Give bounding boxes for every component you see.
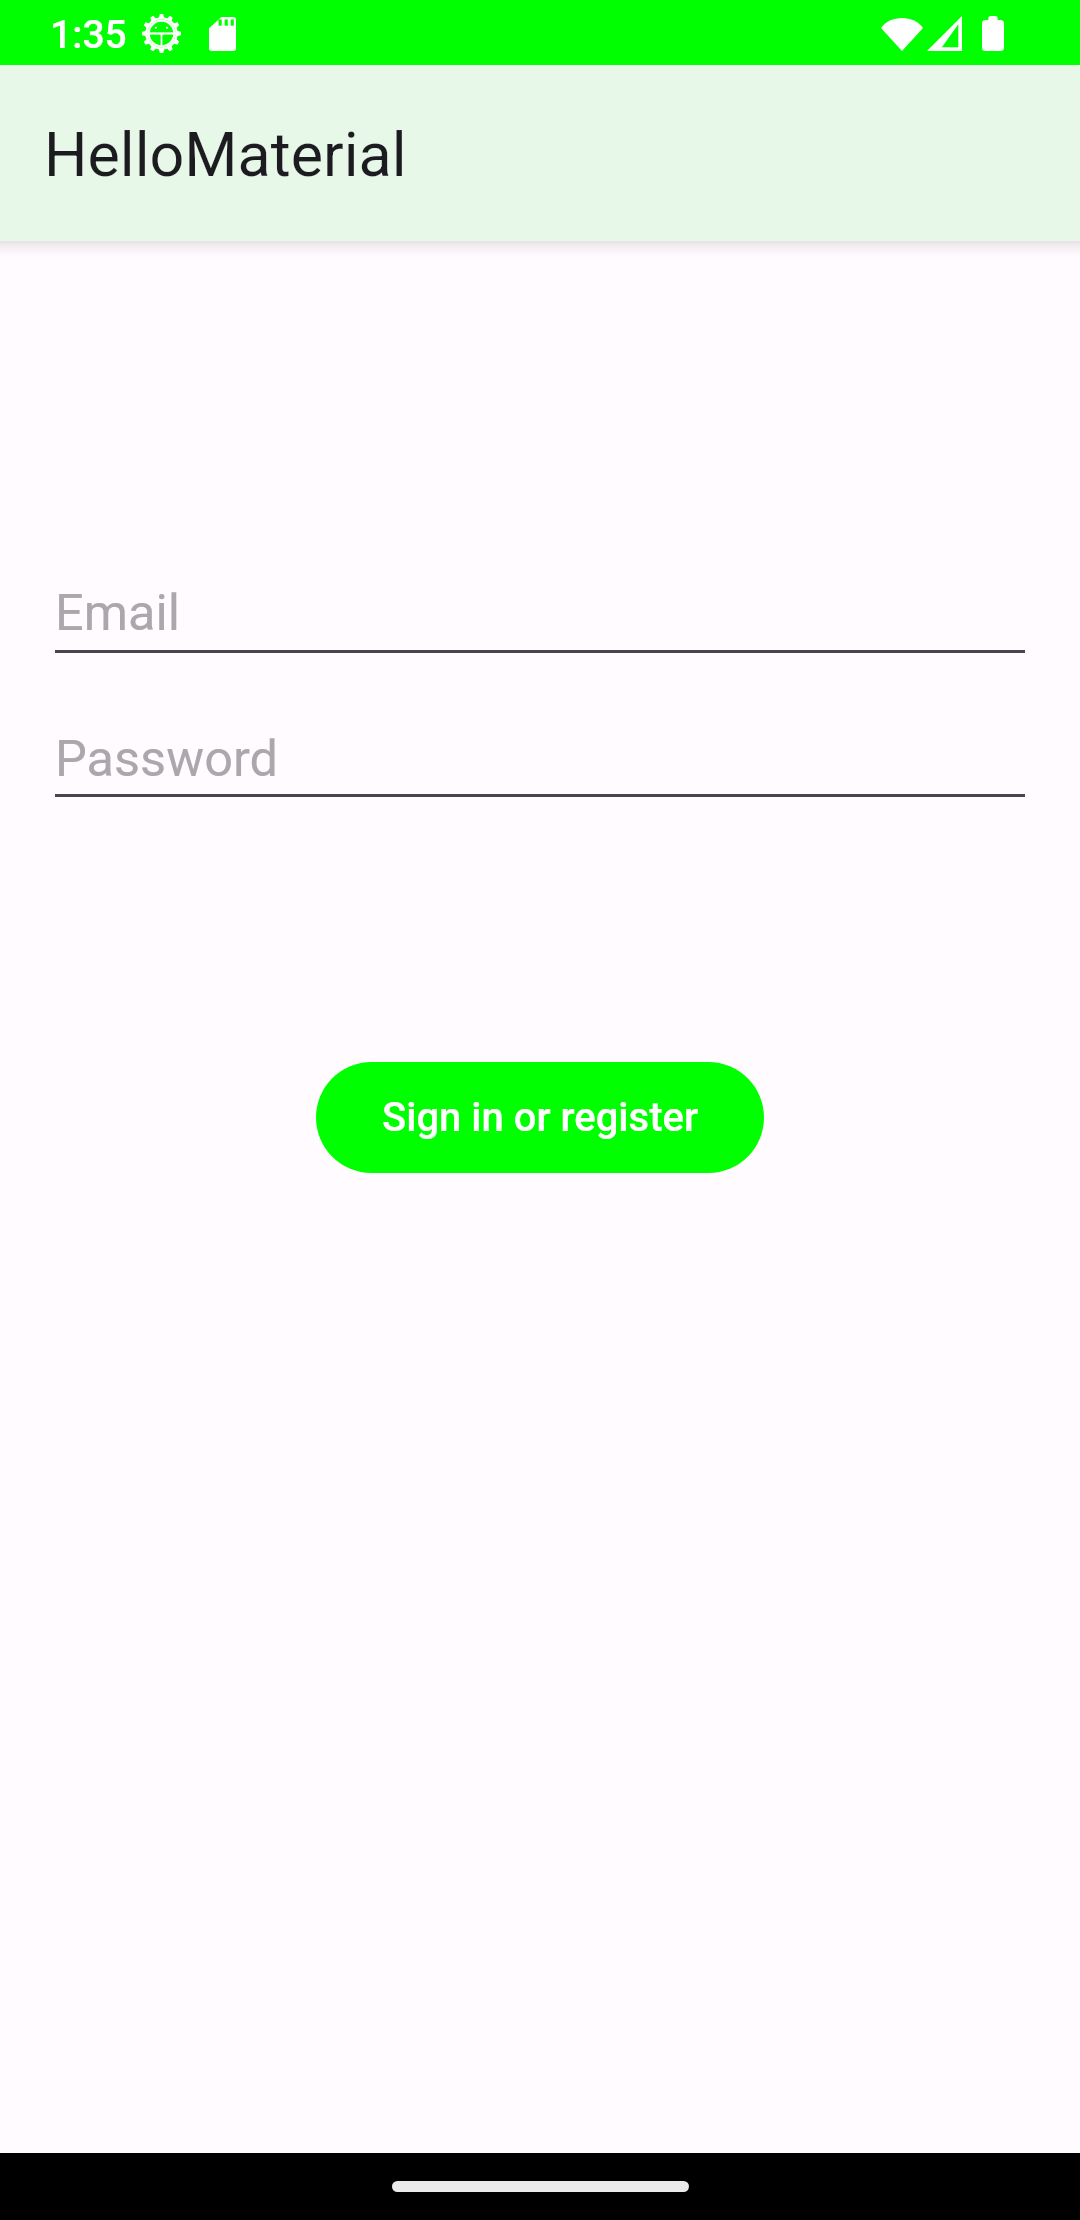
button[interactable]: Password bbox=[55, 713, 1025, 797]
other: Wi-Fi bbox=[881, 16, 923, 51]
staticText: HelloMaterial bbox=[44, 119, 407, 190]
staticText: Sign in or register bbox=[382, 1094, 699, 1141]
other: Mobile signal bbox=[927, 16, 962, 51]
staticText: 1:35 bbox=[50, 12, 127, 58]
button[interactable]: Email bbox=[55, 567, 1025, 653]
button[interactable]: Sign in or register bbox=[316, 1062, 764, 1173]
staticText: Email bbox=[55, 583, 181, 642]
other: Developer options bbox=[142, 14, 181, 53]
staticText: Password bbox=[55, 729, 279, 788]
other: SD card bbox=[209, 17, 236, 51]
other: Home bbox=[392, 2181, 689, 2192]
other: Battery bbox=[982, 16, 1004, 51]
